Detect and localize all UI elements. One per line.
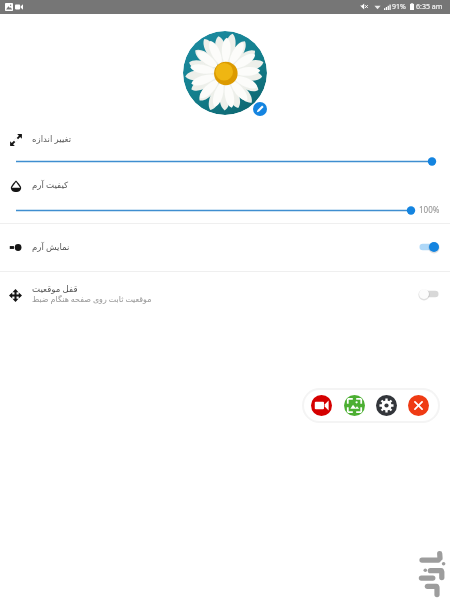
staticText: کیفیت آرم	[32, 179, 69, 191]
button[interactable]: Edit	[253, 102, 267, 116]
button[interactable]: کیفیت آرم	[0, 174, 450, 222]
button[interactable]: Take screenshot	[344, 395, 365, 416]
button[interactable]: Settings	[376, 395, 397, 416]
staticText: نمایش آرم	[32, 241, 70, 253]
staticText: 91%	[392, 2, 406, 12]
staticText: موقعیت ثابت روی صفحه هنگام ضبط	[32, 294, 152, 305]
button[interactable]: Record video	[311, 395, 332, 416]
button[interactable]: Change logo image	[183, 31, 267, 115]
button[interactable]: نمایش آرم	[0, 224, 450, 270]
button[interactable]: قفل موقعیت	[0, 272, 450, 318]
staticText: تغییر اندازه	[32, 133, 72, 145]
button[interactable]: Close	[408, 395, 429, 416]
button[interactable]: Enabled	[414, 239, 444, 255]
staticText: 6:35 am	[416, 2, 443, 12]
button[interactable]: Disabled	[414, 286, 444, 302]
button[interactable]: تغییر اندازه	[0, 127, 450, 174]
staticText: 100%	[419, 204, 440, 215]
staticText: قفل موقعیت	[32, 283, 78, 295]
